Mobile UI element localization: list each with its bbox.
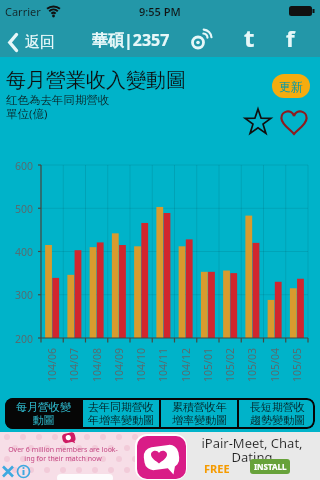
staticText: 104/12 (179, 348, 193, 382)
staticText: 104/08 (90, 348, 104, 382)
staticText: 9:55 PM (139, 4, 181, 19)
staticText: 600 (15, 159, 34, 173)
staticText: 104/06 (45, 348, 59, 382)
staticText: 红色為去年同期營收 (6, 93, 110, 107)
staticText: 更新 (279, 79, 303, 94)
staticText: 104/11 (156, 348, 170, 382)
staticText: iPair-Meet, Chat, Dating (189, 434, 315, 465)
button[interactable]: t (244, 21, 255, 54)
button[interactable] (2, 465, 32, 479)
button[interactable]: 累積營收年 增率變動圖 (161, 398, 237, 429)
button[interactable]: 更新 (272, 74, 310, 98)
staticText: 400 (15, 245, 34, 259)
staticText: 200 (15, 332, 34, 346)
button[interactable]: INSTALL (250, 459, 290, 474)
staticText: 105/01 (201, 348, 215, 382)
staticText: 104/09 (112, 348, 126, 382)
staticText: INSTALL (254, 461, 287, 472)
button[interactable]: 去年同期營收 年增率變動圖 (83, 398, 159, 429)
button[interactable] (135, 434, 187, 480)
staticText: Over 6 million members are look- ing for… (0, 445, 126, 463)
staticText: 105/05 (290, 348, 304, 382)
staticText: 104/07 (67, 348, 81, 382)
staticText: 300 (15, 288, 34, 302)
staticText: FREE (204, 461, 230, 476)
button[interactable]: f (286, 23, 295, 53)
button[interactable]: 每月營收變 動圖 (5, 398, 81, 429)
button[interactable]: 返回 (8, 33, 55, 52)
staticText: 長短期營收 趨勢變動圖 (250, 400, 305, 427)
staticText: 單位(億) (6, 106, 48, 122)
staticText: 華碩|2357 (92, 29, 170, 51)
staticText: 105/03 (245, 348, 259, 382)
staticText: 累積營收年 增率變動圖 (172, 400, 227, 427)
staticText: 每月營業收入變動圖 (6, 68, 186, 93)
button[interactable]: 長短期營收 趨勢變動圖 (239, 398, 315, 429)
staticText: 105/04 (268, 348, 282, 382)
button[interactable] (280, 108, 308, 135)
staticText: 104/10 (134, 348, 148, 382)
button[interactable] (244, 107, 272, 135)
staticText: Carrier (5, 4, 41, 19)
staticText: 去年同期營收 年增率變動圖 (88, 400, 154, 427)
staticText: 每月營收變 動圖 (16, 400, 71, 427)
button[interactable] (189, 29, 215, 50)
staticText: 500 (15, 202, 34, 216)
staticText: 返回 (25, 33, 55, 52)
staticText: 105/02 (223, 348, 237, 382)
